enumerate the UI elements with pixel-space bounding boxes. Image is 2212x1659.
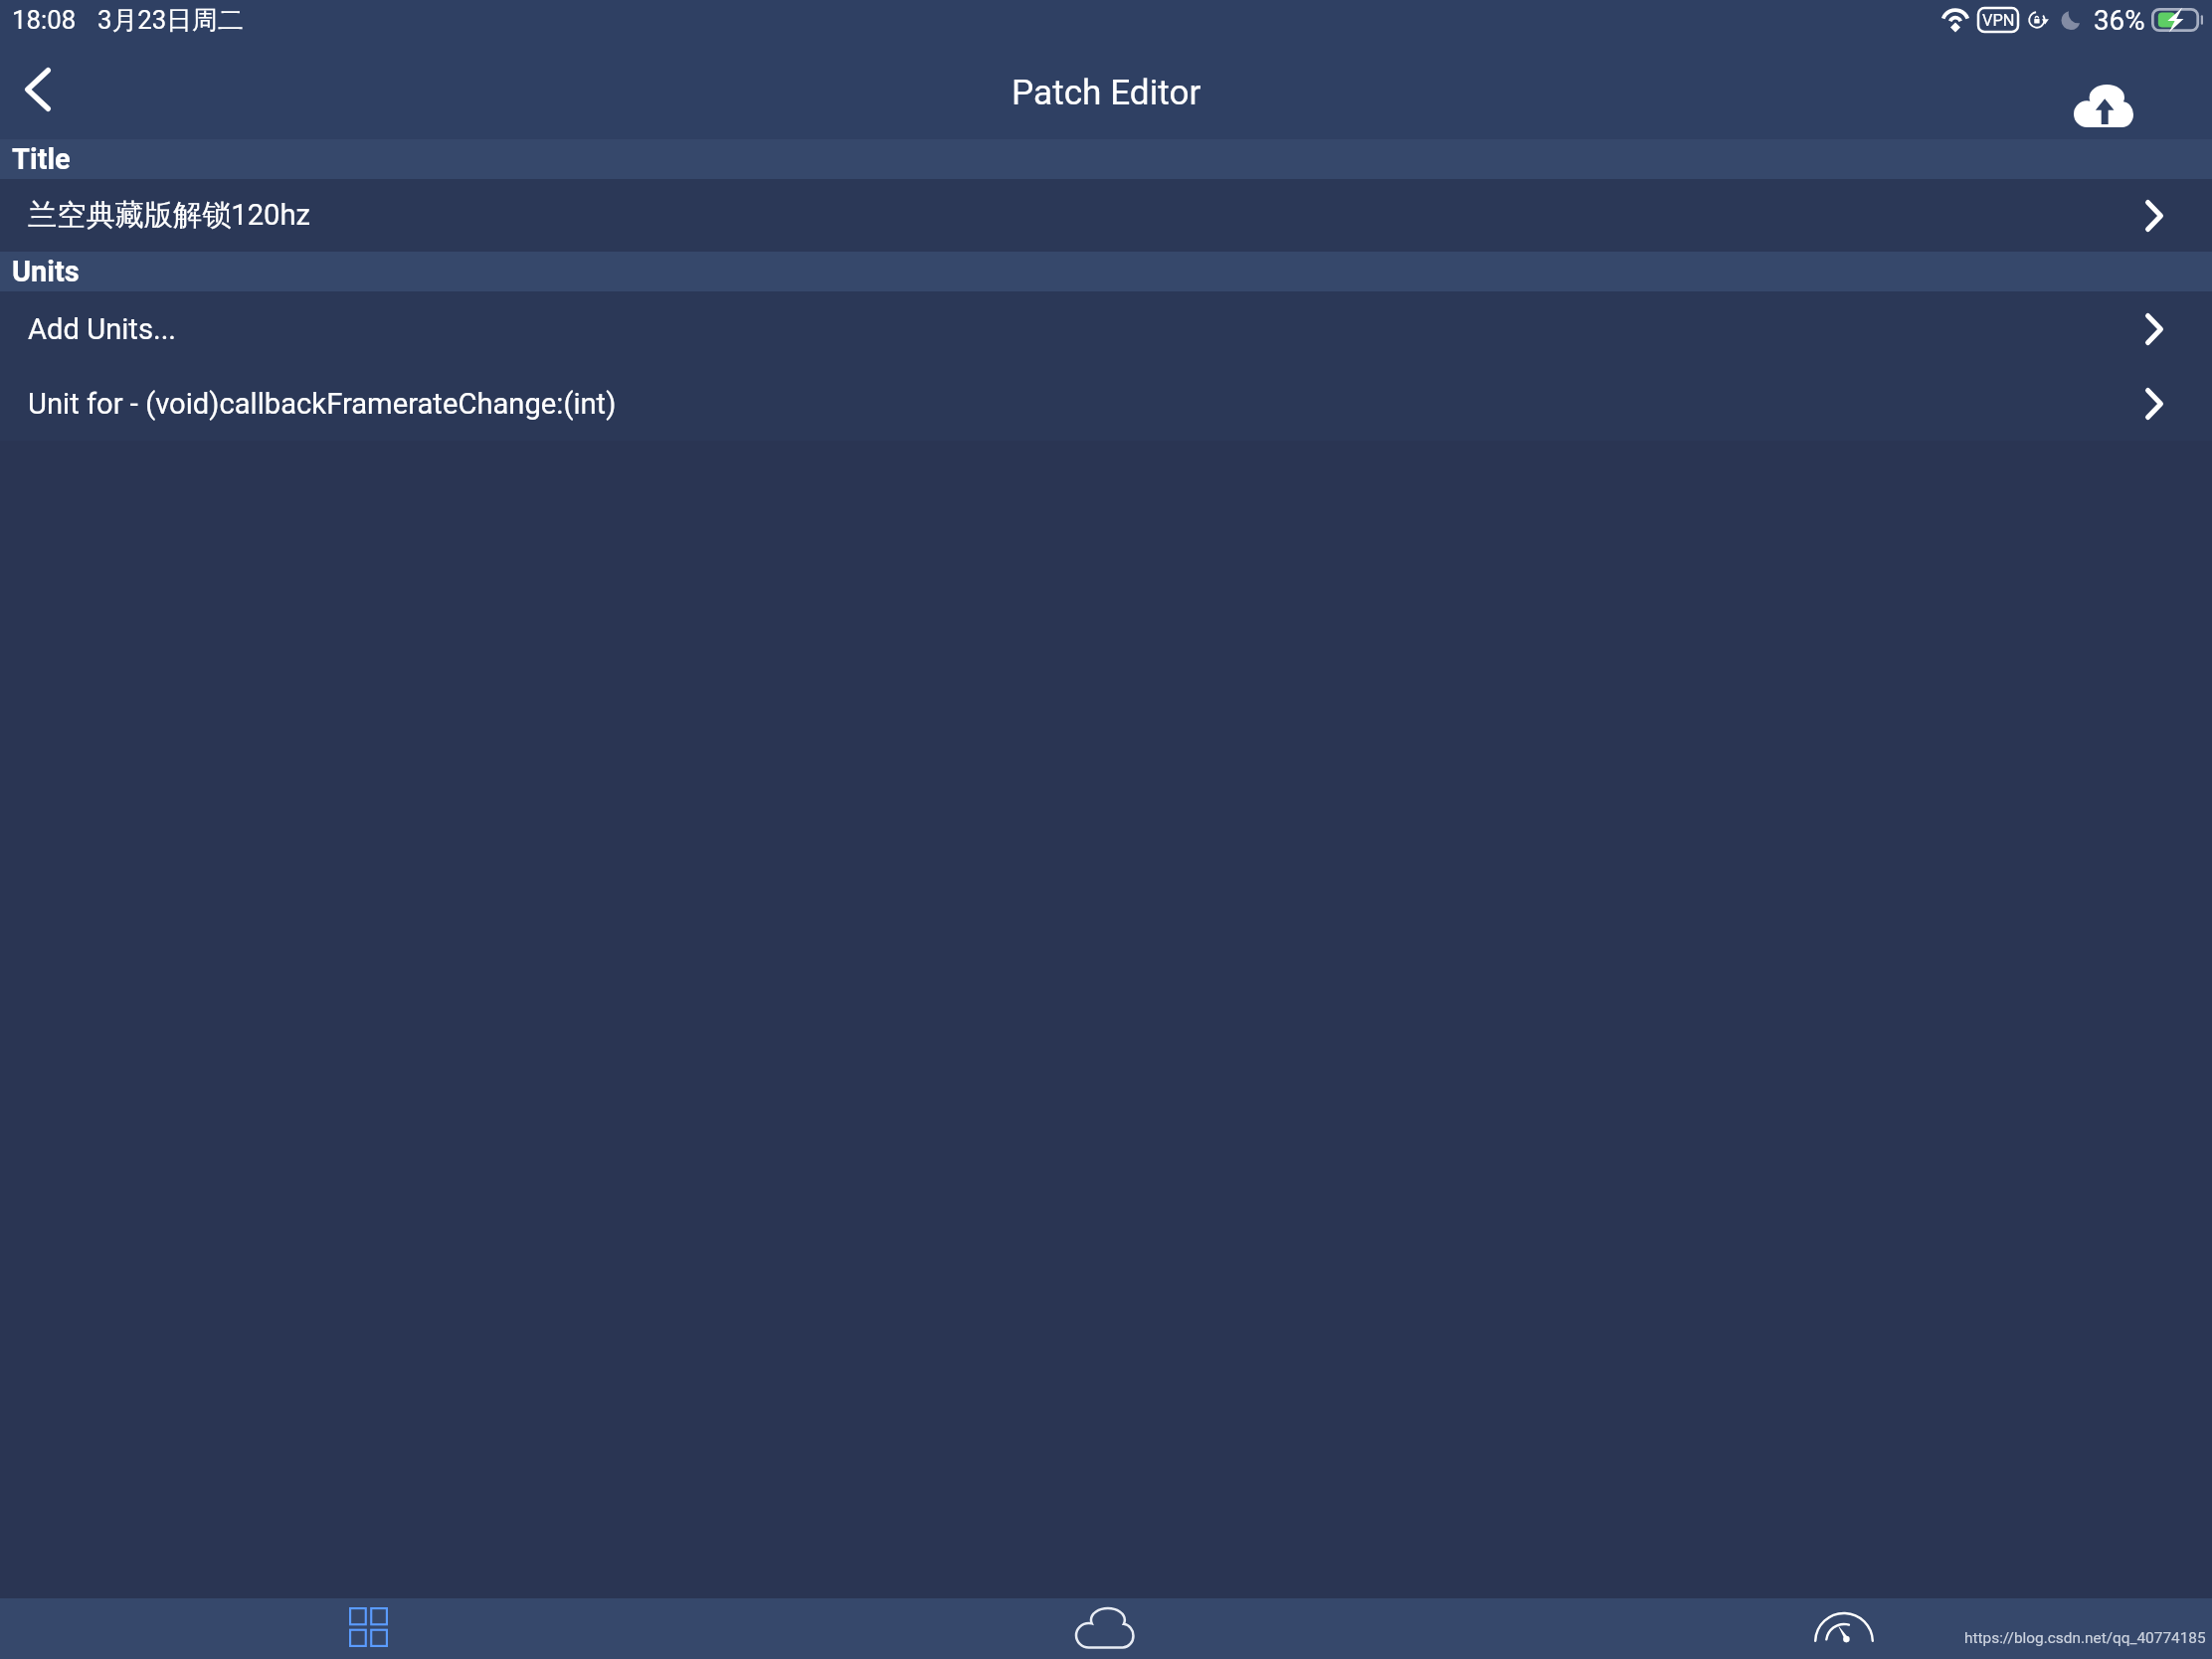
staticText: Title xyxy=(12,142,71,176)
button[interactable]: Upload to cloud xyxy=(2068,70,2139,141)
button[interactable]: 兰空典藏版解锁120hz xyxy=(0,179,2212,252)
staticText: VPN xyxy=(1982,11,2015,30)
staticText: 3月23日周二 xyxy=(97,4,244,37)
staticText: 兰空典藏版解锁120hz xyxy=(28,197,311,234)
staticText: Units xyxy=(12,255,80,288)
staticText: https://blog.csdn.net/qq_40774185 xyxy=(1964,1629,2206,1647)
button[interactable]: Performance xyxy=(1812,1595,1876,1656)
button[interactable]: Add Units... xyxy=(0,291,2212,366)
button[interactable]: Cloud xyxy=(1074,1598,1138,1659)
staticText: 18:08 xyxy=(12,5,77,35)
button[interactable]: Back xyxy=(2,54,74,125)
staticText: 36% xyxy=(2094,4,2145,37)
button[interactable]: Unit for - (void)callbackFramerateChange… xyxy=(0,366,2212,441)
staticText: Unit for - (void)callbackFramerateChange… xyxy=(28,387,617,421)
button[interactable]: Apps xyxy=(348,1607,388,1647)
staticText: Patch Editor xyxy=(1012,72,1201,112)
staticText: Add Units... xyxy=(28,312,177,346)
